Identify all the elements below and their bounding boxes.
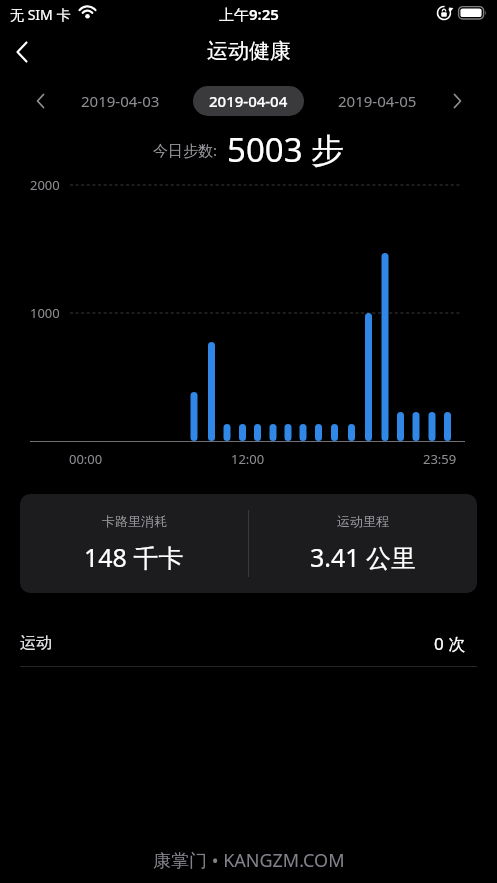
staticText: 1000 bbox=[30, 304, 60, 322]
staticText: 运动 bbox=[20, 633, 52, 653]
staticText: 12:00 bbox=[231, 450, 265, 468]
staticText: 卡路里消耗 bbox=[102, 513, 167, 529]
staticText: 23:59 bbox=[423, 450, 457, 468]
staticText: 00:00 bbox=[69, 450, 103, 468]
button[interactable] bbox=[0, 620, 497, 666]
staticText: 2019-04-03 bbox=[81, 91, 160, 111]
staticText: 运动里程 bbox=[337, 513, 389, 529]
staticText: 2000 bbox=[30, 176, 60, 194]
staticText: 2019-04-05 bbox=[338, 91, 417, 111]
button[interactable]: 2019-04-03 bbox=[0, 0, 120, 80]
button[interactable]: 卡路里消耗 bbox=[20, 494, 477, 593]
staticText: 148 千卡 bbox=[84, 540, 184, 574]
staticText: 2019-04-04 bbox=[209, 91, 288, 111]
button[interactable]: 2019-04-04 bbox=[193, 86, 304, 116]
staticText: 5003 步 bbox=[227, 127, 345, 172]
button[interactable] bbox=[441, 85, 473, 117]
button[interactable] bbox=[4, 36, 40, 68]
button[interactable] bbox=[24, 85, 56, 117]
staticText: 康掌门 • KANGZM.COM bbox=[153, 848, 345, 873]
staticText: 3.41 公里 bbox=[310, 540, 417, 574]
staticText: 0 次 bbox=[434, 632, 466, 655]
button[interactable]: 2019-04-05 bbox=[0, 0, 120, 80]
staticText: 上午9:25 bbox=[219, 4, 279, 24]
staticText: 今日步数: bbox=[153, 140, 218, 160]
staticText: 运动健康 bbox=[207, 38, 291, 64]
staticText: 无 SIM 卡 bbox=[10, 5, 71, 24]
